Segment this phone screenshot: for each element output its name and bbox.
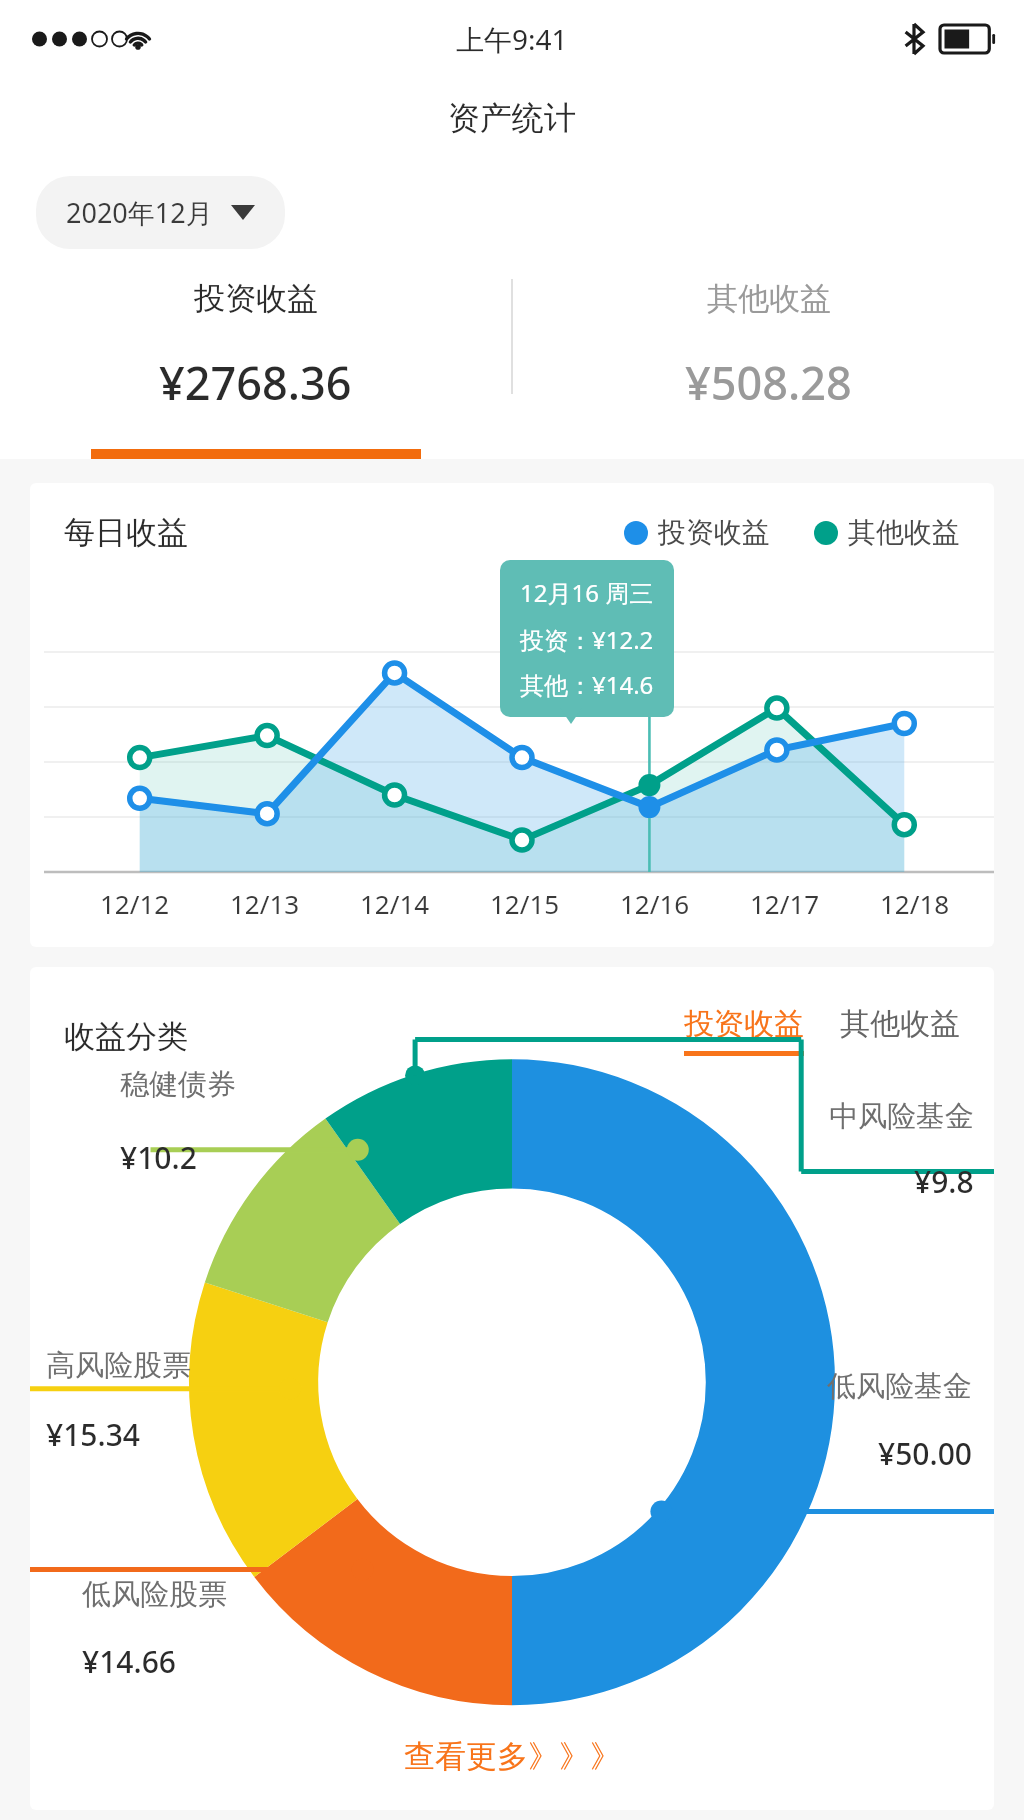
staticText: 低风险基金: [827, 1368, 972, 1405]
staticText: 12/12: [100, 886, 170, 921]
staticText: ¥508.28: [685, 352, 852, 413]
staticText: ¥10.2: [120, 1137, 197, 1178]
staticText: 其他：¥14.6: [520, 668, 654, 701]
staticText: 12月16 周三: [520, 576, 654, 609]
staticText: 2020年12月: [66, 194, 213, 231]
button[interactable]: 其他收益: [840, 1005, 960, 1056]
button[interactable]: 投资收益: [684, 1005, 804, 1056]
button[interactable]: 投资收益: [624, 515, 770, 550]
staticText: 12/18: [880, 886, 950, 921]
staticText: 12/13: [230, 886, 300, 921]
staticText: 每日收益: [64, 513, 188, 552]
staticText: 中风险基金: [829, 1098, 974, 1135]
staticText: ¥9.8: [914, 1161, 974, 1202]
staticText: 投资收益: [194, 279, 318, 318]
staticText: 资产统计: [448, 98, 576, 138]
button[interactable]: 查看更多》》》: [30, 1702, 994, 1810]
staticText: ¥15.34: [46, 1414, 140, 1455]
staticText: 投资收益: [684, 1005, 804, 1043]
staticText: 其他收益: [707, 279, 831, 318]
staticText: 其他收益: [840, 1005, 960, 1043]
staticText: 其他收益: [848, 515, 960, 550]
staticText: 投资：¥12.2: [520, 623, 654, 656]
staticText: 12/17: [750, 886, 820, 921]
button[interactable]: 其他收益: [513, 279, 1024, 459]
staticText: 12/15: [490, 886, 560, 921]
staticText: 低风险股票: [82, 1576, 227, 1613]
staticText: ¥2768.36: [159, 352, 352, 413]
button[interactable]: 投资收益: [0, 279, 511, 459]
staticText: 收益分类: [64, 1017, 188, 1056]
staticText: 稳健债券: [120, 1066, 236, 1103]
staticText: 查看更多》》》: [404, 1737, 621, 1776]
staticText: ¥14.66: [82, 1641, 176, 1682]
staticText: 投资收益: [658, 515, 770, 550]
staticText: 高风险股票: [46, 1347, 191, 1384]
staticText: 12/14: [360, 886, 430, 921]
button[interactable]: 其他收益: [814, 515, 960, 550]
button[interactable]: 2020年12月: [36, 176, 285, 249]
staticText: ¥50.00: [878, 1433, 972, 1474]
staticText: 12/16: [620, 886, 690, 921]
staticText: 上午9:41: [456, 20, 568, 58]
